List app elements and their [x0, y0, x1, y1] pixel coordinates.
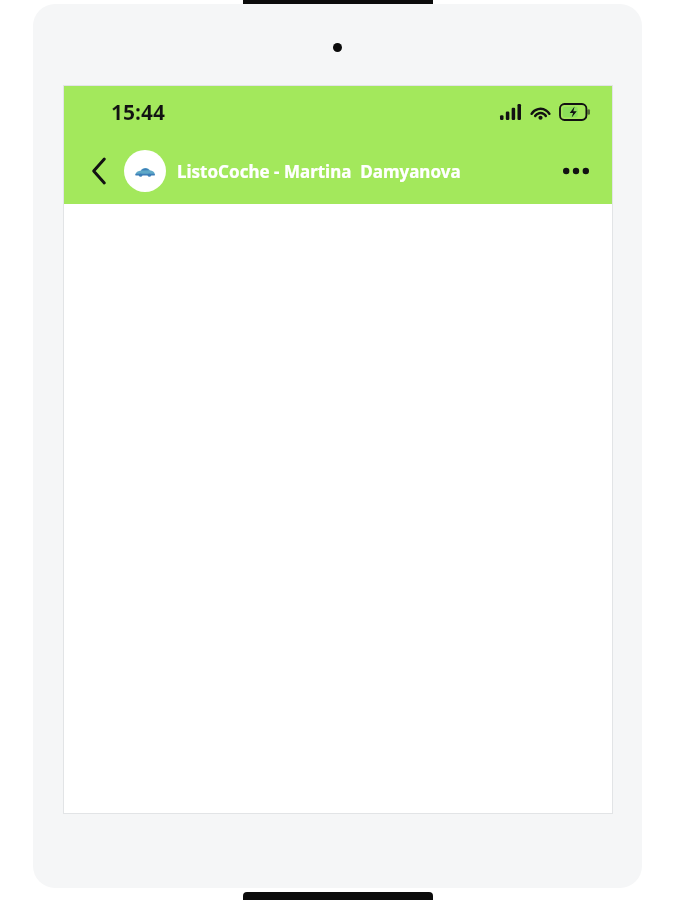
staticText: ListoCoche - Martina Damyanova — [177, 160, 550, 183]
staticText: 15:44 — [111, 98, 165, 127]
button[interactable]: Profile picture — [124, 150, 166, 192]
button[interactable]: Back — [78, 150, 120, 192]
button[interactable]: More options — [556, 151, 596, 191]
